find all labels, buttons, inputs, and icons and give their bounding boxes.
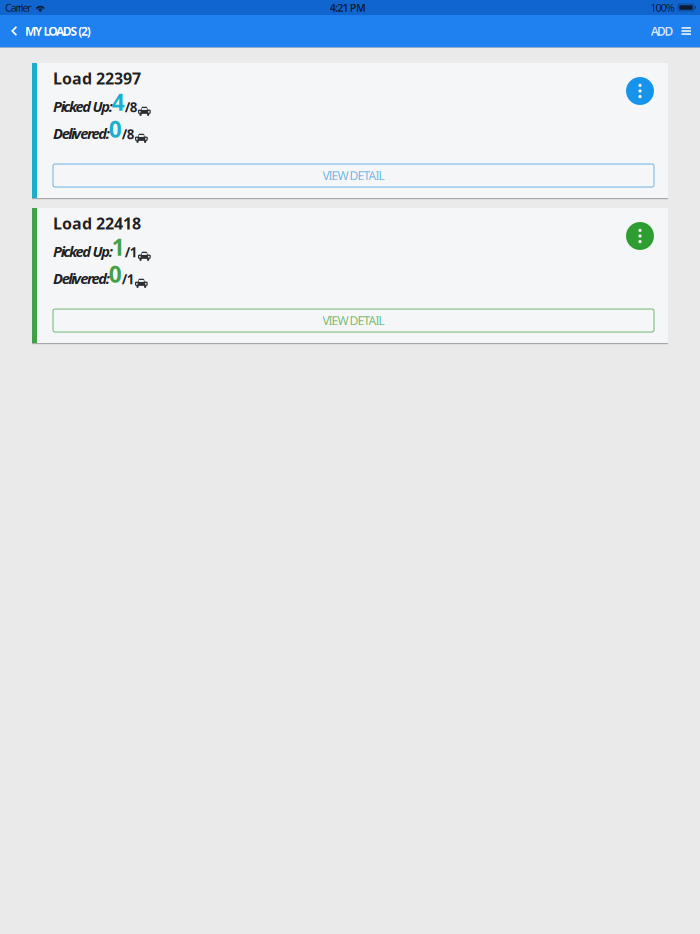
button[interactable]: MY LOADS (2): [0, 15, 101, 47]
staticText: 100%: [650, 0, 675, 15]
staticText: Carrier: [5, 0, 31, 15]
button[interactable]: More options: [626, 222, 654, 250]
staticText: Load 22397: [53, 68, 141, 89]
staticText: 0: [109, 259, 122, 289]
staticText: /8: [125, 98, 138, 116]
staticText: Delivered:: [53, 123, 110, 143]
button[interactable]: Menu: [673, 15, 700, 47]
button[interactable]: More options: [626, 77, 654, 105]
staticText: Picked Up:: [53, 96, 113, 116]
button[interactable]: VIEW DETAIL: [53, 164, 654, 187]
staticText: ADD: [651, 23, 673, 39]
staticText: /1: [122, 270, 135, 288]
staticText: Picked Up:: [53, 241, 113, 261]
button[interactable]: ADD: [643, 15, 673, 47]
button[interactable]: VIEW DETAIL: [53, 309, 654, 332]
staticText: 1: [112, 232, 125, 262]
staticText: Load 22418: [53, 213, 141, 234]
staticText: 4: [112, 87, 125, 117]
staticText: VIEW DETAIL: [322, 312, 384, 328]
staticText: VIEW DETAIL: [322, 167, 384, 183]
staticText: 0: [109, 114, 122, 144]
staticText: /1: [125, 243, 138, 261]
staticText: 4:21 PM: [330, 0, 366, 15]
staticText: /8: [122, 125, 135, 143]
staticText: Delivered:: [53, 268, 110, 288]
staticText: MY LOADS (2): [25, 23, 91, 39]
